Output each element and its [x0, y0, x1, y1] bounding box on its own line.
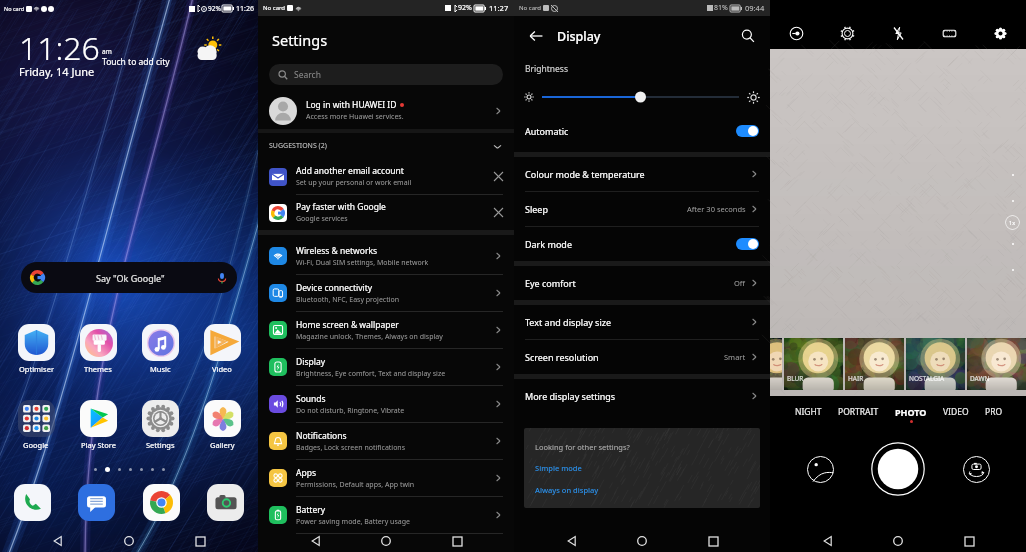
button[interactable]: Camera: [207, 484, 244, 521]
button[interactable]: Gallery: [200, 400, 244, 450]
staticText: Touch to add city: [102, 56, 170, 68]
button[interactable]: Device connectivity: [258, 275, 514, 311]
button[interactable]: Back: [525, 25, 547, 47]
button[interactable]: Google: [14, 400, 58, 450]
button[interactable]: Sleep: [514, 192, 770, 226]
button[interactable]: NIGHT: [795, 406, 822, 418]
button[interactable]: Flash off: [886, 21, 910, 45]
button[interactable]: Toggle: [736, 238, 759, 250]
staticText: PHOTO: [895, 406, 927, 418]
staticText: Magazine unlock, Themes, Always on displ…: [296, 332, 443, 342]
button[interactable]: Search: [737, 25, 759, 47]
button[interactable]: Messages: [78, 484, 115, 521]
staticText: 1x: [1009, 219, 1016, 226]
button[interactable]: Zoom: [1005, 215, 1020, 230]
button[interactable]: Video: [200, 324, 244, 374]
button[interactable]: Back: [815, 530, 841, 552]
button[interactable]: AI: [835, 21, 859, 45]
staticText: Pay faster with Google: [296, 201, 386, 213]
staticText: DAWN: [970, 374, 990, 383]
button[interactable]: Recents: [444, 530, 470, 552]
staticText: am: [102, 47, 112, 56]
button[interactable]: Recents: [187, 530, 213, 552]
button[interactable]: Wireless & networks: [258, 238, 514, 274]
staticText: NIGHT: [795, 406, 822, 418]
button[interactable]: Say "Ok Google": [21, 262, 237, 293]
staticText: Brightness: [525, 63, 568, 75]
button[interactable]: Log in with HUAWEI ID: [258, 92, 514, 129]
button[interactable]: Apps: [258, 460, 514, 496]
button[interactable]: PORTRAIT: [838, 406, 879, 418]
button[interactable]: Optimiser: [14, 324, 58, 374]
button[interactable]: Gallery: [806, 455, 834, 483]
staticText: Log in with HUAWEI ID: [306, 99, 397, 111]
button[interactable]: Simple mode: [535, 463, 582, 473]
staticText: No card: [263, 4, 286, 12]
button[interactable]: Home: [629, 530, 655, 552]
button[interactable]: Home: [373, 530, 399, 552]
button[interactable]: Sounds: [258, 386, 514, 422]
button[interactable]: PHOTO: [895, 406, 927, 423]
button[interactable]: Text and display size: [514, 305, 770, 339]
button[interactable]: Search: [269, 64, 503, 85]
staticText: Brightness, Eye comfort, Text and displa…: [296, 369, 446, 379]
button[interactable]: Music: [138, 324, 182, 374]
button[interactable]: Colour mode & temperature: [514, 157, 770, 191]
button[interactable]: [770, 338, 782, 390]
button[interactable]: Battery: [258, 497, 514, 533]
button[interactable]: Screen resolution: [514, 340, 770, 374]
staticText: More display settings: [525, 390, 616, 402]
button[interactable]: Dark mode: [514, 227, 770, 261]
button[interactable]: Dismiss: [494, 208, 503, 217]
button[interactable]: Collapse: [492, 141, 503, 152]
button[interactable]: Dismiss: [494, 172, 503, 181]
button[interactable]: Back: [303, 530, 329, 552]
button[interactable]: Home screen & wallpaper: [258, 312, 514, 348]
button[interactable]: Eye comfort: [514, 266, 770, 300]
button[interactable]: Settings: [988, 21, 1012, 45]
staticText: Optimiser: [19, 364, 54, 374]
staticText: Colour mode & temperature: [525, 168, 645, 180]
staticText: PRO: [985, 406, 1003, 418]
button[interactable]: Settings: [138, 400, 182, 450]
button[interactable]: NOSTALGIA: [906, 338, 965, 390]
button[interactable]: Pay faster with Google: [258, 195, 514, 230]
button[interactable]: BLUR: [784, 338, 843, 390]
staticText: Gallery: [210, 440, 235, 450]
button[interactable]: Brightness slider: [542, 88, 739, 106]
button[interactable]: Notifications: [258, 423, 514, 459]
staticText: Say "Ok Google": [96, 272, 165, 284]
button[interactable]: Recents: [700, 530, 726, 552]
staticText: Smart: [724, 352, 746, 362]
button[interactable]: Back: [559, 530, 585, 552]
staticText: Sounds: [296, 393, 326, 405]
staticText: Wireless & networks: [296, 245, 378, 257]
button[interactable]: More display settings: [514, 379, 770, 413]
button[interactable]: Switch camera: [962, 455, 990, 483]
button[interactable]: Phone: [14, 484, 51, 521]
button[interactable]: DAWN: [967, 338, 1026, 390]
button[interactable]: Recents: [956, 530, 982, 552]
button[interactable]: Home: [116, 530, 142, 552]
button[interactable]: HAIR: [845, 338, 904, 390]
button[interactable]: Shutter: [871, 442, 925, 496]
button[interactable]: Automatic: [514, 118, 770, 144]
button[interactable]: Chrome: [143, 484, 180, 521]
button[interactable]: VIDEO: [943, 406, 969, 418]
button[interactable]: Play Store: [76, 400, 120, 450]
button[interactable]: Add another email account: [258, 159, 514, 194]
staticText: No card: [519, 4, 542, 12]
staticText: Access more Huawei services.: [306, 112, 404, 122]
staticText: Text and display size: [525, 316, 612, 328]
button[interactable]: Back: [45, 530, 71, 552]
button[interactable]: Always on display: [535, 485, 599, 495]
button[interactable]: Display: [258, 349, 514, 385]
button[interactable]: Aperture: [784, 21, 808, 45]
button[interactable]: Home: [885, 530, 911, 552]
button[interactable]: Aspect ratio: [937, 21, 961, 45]
button[interactable]: Themes: [76, 324, 120, 374]
button[interactable]: PRO: [985, 406, 1003, 418]
staticText: 11:27: [489, 3, 509, 13]
staticText: Friday, 14 June: [19, 64, 95, 79]
button[interactable]: Toggle: [736, 125, 759, 137]
